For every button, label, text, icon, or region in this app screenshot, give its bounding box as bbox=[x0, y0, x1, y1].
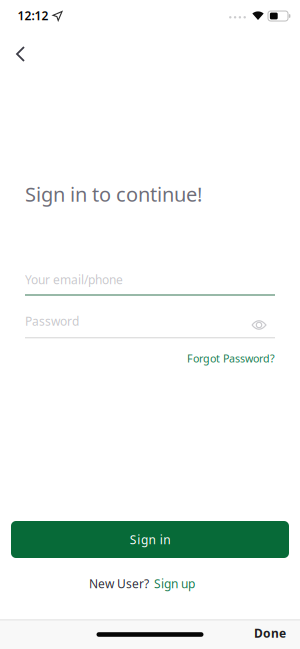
staticText: New User? bbox=[89, 575, 149, 591]
button[interactable]: Back bbox=[15, 46, 25, 62]
staticText: 12:12 bbox=[17, 7, 48, 23]
staticText: Sign in to continue! bbox=[25, 181, 202, 207]
button[interactable]: Sign in bbox=[11, 521, 289, 558]
staticText: Sign in bbox=[130, 531, 170, 547]
staticText: Sign up bbox=[154, 575, 195, 591]
button[interactable]: Show password bbox=[251, 319, 267, 331]
staticText: Your email/phone bbox=[25, 271, 123, 287]
button[interactable]: Your email/phone bbox=[25, 265, 275, 296]
staticText: Password bbox=[25, 313, 79, 329]
staticText: Forgot Password? bbox=[187, 351, 275, 365]
staticText: Done bbox=[254, 625, 286, 641]
button[interactable]: Password bbox=[25, 305, 275, 338]
button[interactable]: Sign up bbox=[154, 575, 195, 591]
button[interactable]: Done bbox=[254, 625, 286, 641]
button[interactable]: Forgot Password? bbox=[187, 351, 275, 365]
